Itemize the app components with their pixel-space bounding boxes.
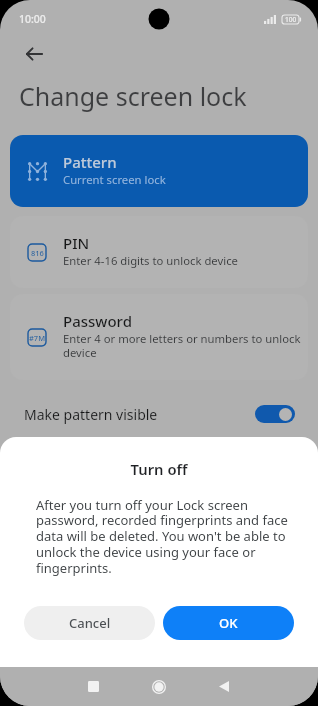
button[interactable]: Make pattern visible	[0, 392, 318, 436]
button[interactable]: Navigate up	[16, 36, 52, 72]
staticText: 10:00	[19, 12, 46, 26]
staticText: 100	[285, 15, 297, 24]
staticText: #7M	[29, 333, 46, 343]
staticText: Cancel	[69, 614, 111, 632]
staticText: After you turn off your Lock screen pass…	[36, 496, 291, 577]
staticText: Change screen lock	[19, 79, 247, 113]
button[interactable]: 816	[10, 216, 308, 288]
staticText: Turn off	[0, 459, 318, 479]
button[interactable]: Recent apps	[73, 667, 113, 706]
button[interactable]: Cancel	[24, 606, 155, 640]
button[interactable]: Pattern	[10, 135, 308, 207]
button[interactable]: Home	[139, 667, 179, 706]
staticText: Make pattern visible	[24, 405, 158, 424]
button[interactable]: OK	[163, 606, 294, 640]
staticText: PIN	[63, 233, 90, 253]
staticText: Password	[63, 311, 132, 331]
staticText: Enter 4 or more letters or numbers to un…	[63, 331, 308, 360]
staticText: Enter 4-16 digits to unlock device	[63, 253, 238, 268]
button[interactable]: #7M	[10, 294, 308, 380]
button[interactable]: Back	[204, 667, 244, 706]
staticText: OK	[219, 614, 238, 632]
staticText: Current screen lock	[63, 172, 166, 187]
staticText: 816	[31, 248, 44, 258]
staticText: Pattern	[63, 152, 117, 172]
